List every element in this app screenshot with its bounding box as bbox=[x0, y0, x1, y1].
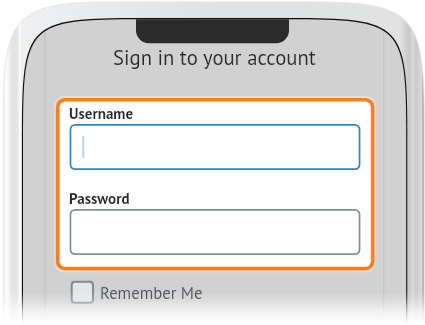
staticText: Password bbox=[69, 189, 130, 208]
staticText: Sign in to your account bbox=[113, 44, 316, 71]
button[interactable]: Password text field bbox=[69, 209, 360, 255]
button[interactable]: Username text field bbox=[69, 124, 360, 170]
staticText: Username bbox=[69, 104, 134, 123]
button[interactable]: Remember Me checkbox bbox=[70, 279, 205, 305]
staticText: Remember Me bbox=[100, 282, 203, 304]
